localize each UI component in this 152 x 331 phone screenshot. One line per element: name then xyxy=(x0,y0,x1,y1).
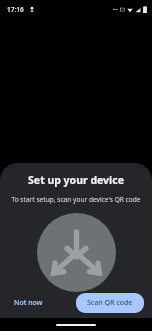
button[interactable]: Scan QR code xyxy=(76,293,144,313)
staticText: Scan QR code xyxy=(87,298,133,308)
staticText: Not now xyxy=(14,298,43,308)
staticText: Set up your device xyxy=(28,173,124,187)
staticText: To start setup, scan your device's QR co… xyxy=(11,195,141,204)
button[interactable]: Not now xyxy=(8,294,49,312)
staticText: 17:16 xyxy=(7,5,24,14)
